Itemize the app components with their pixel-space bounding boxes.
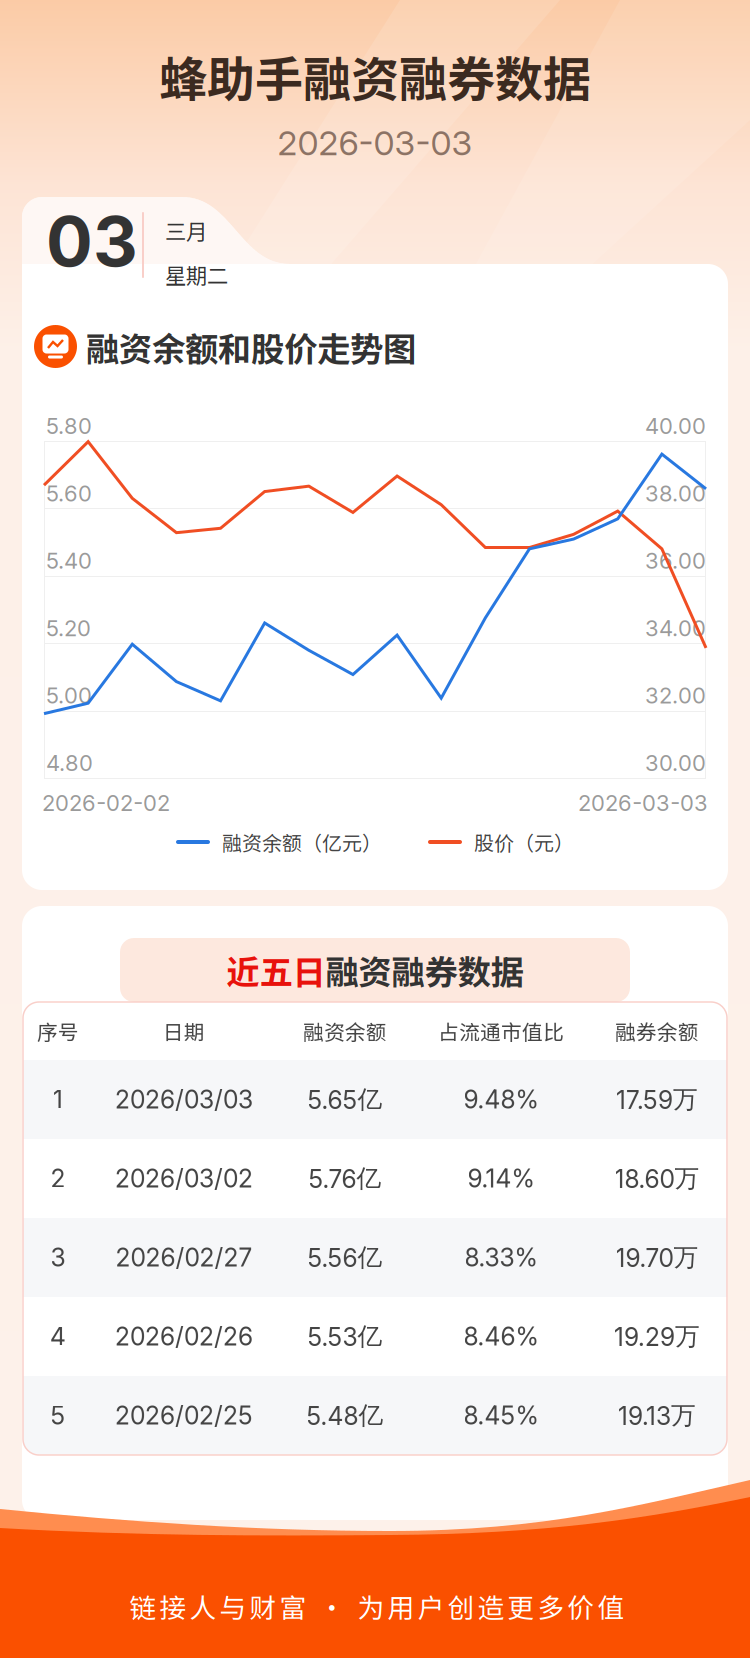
staticText: 2 [50,1164,65,1193]
staticText: 5 [50,1401,65,1430]
staticText: 9.14% [467,1164,534,1193]
staticText: 5.48亿 [306,1400,383,1431]
staticText: 2026-03-03 [578,790,708,816]
staticText: 5.60 [46,480,92,507]
staticText: 5.40 [46,547,92,574]
staticText: 19.70万 [615,1242,698,1273]
staticText: 2026/02/27 [115,1243,252,1272]
staticText: 17.59万 [616,1084,698,1115]
staticText: 星期二 [165,259,228,290]
staticText: 5.80 [46,413,92,439]
staticText: 3 [50,1243,65,1272]
staticText: 32.00 [645,682,706,709]
staticText: 股价（元） [474,827,574,856]
staticText: 融资融券数据 [325,946,523,994]
staticText: 2026-03-03 [277,122,472,163]
staticText: 38.00 [645,480,706,507]
staticText: 19.29万 [614,1321,700,1352]
staticText: 8.46% [463,1322,538,1351]
staticText: 30.00 [645,750,706,776]
staticText: 18.60万 [614,1163,699,1194]
staticText: 5.56亿 [307,1242,382,1273]
staticText: 40.00 [645,413,706,439]
staticText: 8.33% [464,1243,537,1272]
staticText: 占流通市值比 [438,1016,564,1046]
staticText: 5.00 [46,682,92,709]
staticText: 融资余额 [303,1016,387,1046]
staticText: 34.00 [645,615,706,641]
staticText: 三月 [165,215,207,246]
staticText: 融券余额 [615,1016,699,1046]
staticText: 融资余额和股价走势图 [86,323,416,371]
staticText: 5.76亿 [308,1163,381,1194]
staticText: 5.65亿 [307,1084,382,1115]
staticText: 2026/02/26 [115,1322,253,1351]
staticText: 4 [50,1322,66,1351]
staticText: 5.53亿 [307,1321,382,1352]
staticText: 36.00 [645,547,706,574]
staticText: 日期 [163,1016,205,1046]
staticText: 2026-02-02 [42,790,170,816]
staticText: 1 [53,1085,63,1114]
staticText: 蜂助手融资融券数据 [159,41,591,111]
staticText: 近五日 [226,946,325,994]
staticText: 2026/02/25 [115,1401,253,1430]
staticText: 2026/03/02 [115,1164,253,1193]
staticText: 8.45% [463,1401,538,1430]
staticText: 融资余额（亿元） [222,827,382,856]
staticText: 序号 [37,1016,79,1046]
staticText: 4.80 [46,750,93,776]
staticText: 2026/03/03 [115,1085,253,1114]
staticText: 5.20 [46,615,91,641]
staticText: 03 [46,199,138,283]
staticText: 19.13万 [618,1400,696,1431]
staticText: 9.48% [463,1085,538,1114]
staticText: 链接人与财富 · 为用户创造更多价值 [129,1587,624,1625]
